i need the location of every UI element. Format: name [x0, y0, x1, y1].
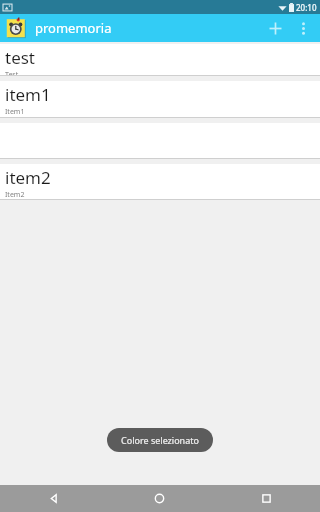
button[interactable]: Add reminder	[261, 14, 289, 42]
staticText: Colore selezionato	[121, 434, 199, 446]
staticText: item2	[5, 166, 51, 189]
staticText: promemoria	[35, 19, 112, 37]
button[interactable]: More options	[289, 14, 317, 42]
button[interactable]: Back	[0, 485, 106, 512]
button[interactable]	[0, 123, 320, 159]
staticText: item1	[5, 83, 51, 106]
button[interactable]: test	[0, 44, 320, 76]
staticText: Item1	[5, 107, 25, 117]
staticText: test	[5, 46, 36, 69]
staticText: Item2	[5, 190, 25, 199]
button[interactable]: item2	[0, 164, 320, 200]
button[interactable]: Recent apps	[213, 485, 320, 512]
staticText: 20:10	[296, 2, 317, 13]
staticText: Test	[5, 70, 19, 75]
button[interactable]: Home	[106, 485, 213, 512]
button[interactable]: item1	[0, 81, 320, 118]
